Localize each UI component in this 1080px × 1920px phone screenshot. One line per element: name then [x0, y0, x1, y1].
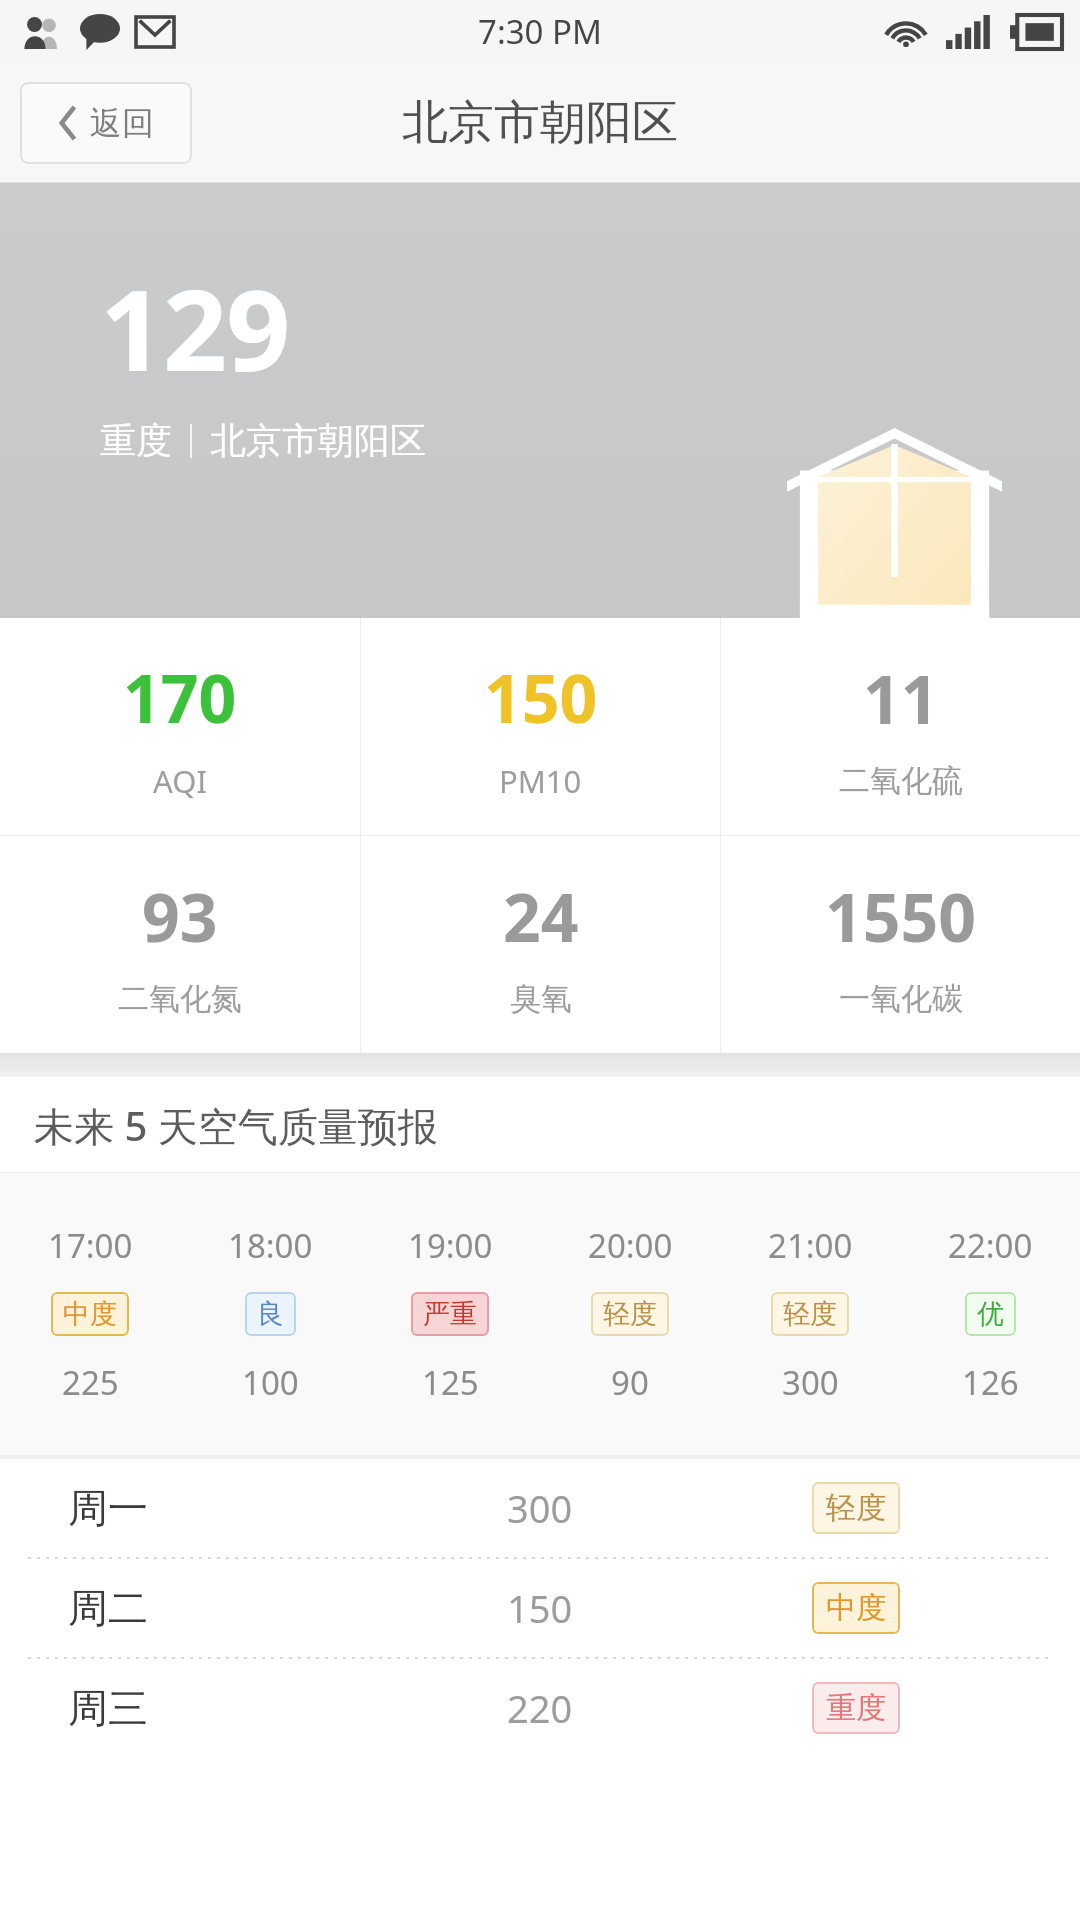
button[interactable]: 20:00: [540, 1173, 720, 1455]
staticText: 二氧化氮: [118, 979, 242, 1018]
staticText: 臭氧: [510, 979, 572, 1018]
staticText: 重度: [826, 1689, 886, 1727]
staticText: 7:30 PM: [478, 9, 602, 54]
staticText: 良: [257, 1297, 284, 1331]
staticText: 220: [507, 1682, 573, 1734]
staticText: 轻度: [826, 1489, 886, 1527]
staticText: 周一: [68, 1483, 148, 1533]
button[interactable]: 93: [0, 836, 360, 1053]
staticText: 11: [863, 653, 939, 743]
button[interactable]: 17:00: [0, 1173, 180, 1455]
staticText: 周二: [68, 1583, 148, 1633]
button[interactable]: 24: [361, 836, 720, 1053]
staticText: 21:00: [768, 1223, 853, 1268]
staticText: 一氧化碳: [839, 979, 963, 1018]
button[interactable]: 返回: [20, 82, 192, 164]
staticText: 126: [962, 1360, 1019, 1405]
staticText: 17:00: [48, 1223, 133, 1268]
staticText: 优: [977, 1297, 1004, 1331]
staticText: 150: [484, 652, 598, 742]
staticText: 未来 5 天空气质量预报: [34, 1098, 438, 1153]
staticText: 重度: [100, 418, 172, 463]
button[interactable]: 周三: [0, 1659, 1080, 1757]
staticText: AQI: [153, 760, 207, 802]
staticText: 19:00: [408, 1223, 493, 1268]
staticText: 20:00: [588, 1223, 673, 1268]
staticText: 225: [62, 1360, 119, 1405]
staticText: 24: [503, 871, 579, 961]
staticText: 北京市朝阳区: [210, 418, 426, 463]
button[interactable]: 周二: [0, 1559, 1080, 1657]
button[interactable]: 22:00: [900, 1173, 1080, 1455]
button[interactable]: 1550: [721, 836, 1080, 1053]
button[interactable]: 21:00: [720, 1173, 900, 1455]
staticText: 返回: [90, 103, 154, 143]
staticText: 125: [422, 1360, 479, 1405]
staticText: 300: [782, 1360, 839, 1405]
staticText: 18:00: [228, 1223, 313, 1268]
staticText: 300: [507, 1482, 573, 1534]
staticText: 129: [100, 251, 290, 404]
staticText: 93: [142, 871, 218, 961]
staticText: 严重: [423, 1297, 477, 1331]
button[interactable]: 18:00: [180, 1173, 360, 1455]
button[interactable]: 170: [0, 618, 360, 835]
staticText: 100: [242, 1360, 299, 1405]
staticText: 22:00: [948, 1223, 1033, 1268]
staticText: 二氧化硫: [839, 761, 963, 800]
staticText: 轻度: [783, 1297, 837, 1331]
button[interactable]: 11: [721, 618, 1080, 835]
staticText: 北京市朝阳区: [402, 94, 678, 152]
staticText: 1550: [825, 871, 977, 961]
button[interactable]: 周一: [0, 1459, 1080, 1557]
staticText: 90: [611, 1360, 649, 1405]
staticText: PM10: [499, 760, 582, 802]
staticText: 中度: [826, 1589, 886, 1627]
staticText: 中度: [63, 1297, 117, 1331]
button[interactable]: 19:00: [360, 1173, 540, 1455]
staticText: 170: [123, 652, 237, 742]
staticText: 150: [507, 1582, 573, 1634]
staticText: 轻度: [603, 1297, 657, 1331]
staticText: 周三: [68, 1683, 148, 1733]
button[interactable]: 150: [361, 618, 720, 835]
